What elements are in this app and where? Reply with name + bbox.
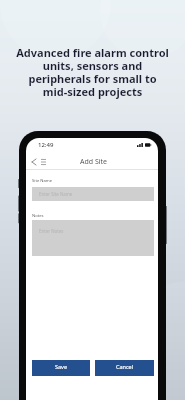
button[interactable]: Menu — [38, 156, 49, 167]
staticText: Site Name — [32, 178, 53, 184]
staticText: Cancel — [116, 363, 134, 370]
staticText: Enter Site Name — [39, 191, 73, 197]
staticText: 12:49 — [38, 141, 54, 149]
staticText: Advanced fire alarm control units, senso… — [0, 45, 185, 99]
staticText: Add Site — [80, 157, 108, 167]
button[interactable]: Save — [32, 360, 90, 376]
staticText: Notes — [32, 213, 44, 219]
staticText: Save — [55, 363, 68, 370]
button[interactable]: Back — [28, 156, 39, 167]
staticText: Enter Notes — [39, 228, 64, 234]
button[interactable]: Cancel — [95, 360, 154, 376]
